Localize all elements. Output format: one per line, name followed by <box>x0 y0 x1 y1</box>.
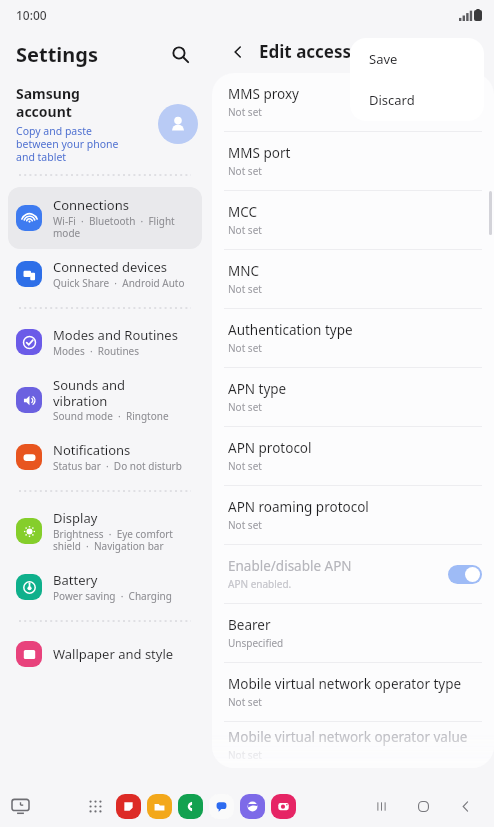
button[interactable]: Home <box>408 791 438 821</box>
staticText: Not set <box>228 223 262 237</box>
button[interactable]: MNC <box>212 250 494 308</box>
button[interactable]: Authentication type <box>212 309 494 367</box>
staticText: Discard <box>369 91 415 109</box>
button[interactable]: Search <box>164 38 196 70</box>
staticText: Notifications <box>53 441 131 459</box>
staticText: Not set <box>228 164 262 178</box>
staticText: Settings <box>16 41 98 68</box>
button[interactable]: Recent panel <box>6 792 34 820</box>
staticText: Brightness · Eye comfort shield · Naviga… <box>53 527 173 553</box>
staticText: Sounds and vibration <box>53 376 125 409</box>
staticText: Sound mode · Ringtone <box>53 409 169 423</box>
button[interactable]: Sounds and vibration <box>0 367 210 432</box>
button[interactable]: Apps <box>82 793 108 819</box>
button[interactable]: Connected devices <box>0 249 210 299</box>
staticText: MMS proxy <box>228 85 299 103</box>
button[interactable]: MMS proxy <box>212 73 494 131</box>
staticText: APN roaming protocol <box>228 498 369 516</box>
staticText: Save <box>369 50 398 68</box>
staticText: Not set <box>228 748 262 762</box>
staticText: Wallpaper and style <box>53 645 174 663</box>
button[interactable]: FOLDER <box>147 794 172 819</box>
staticText: Modes and Routines <box>53 326 178 344</box>
staticText: Not set <box>228 282 262 296</box>
button[interactable]: INTERNET <box>240 794 265 819</box>
staticText: APN type <box>228 380 287 398</box>
staticText: APN enabled. <box>228 577 292 591</box>
staticText: MCC <box>228 203 258 221</box>
button[interactable]: Samsung account <box>0 78 210 170</box>
staticText: MNC <box>228 262 260 280</box>
button[interactable]: Notifications <box>0 432 210 482</box>
staticText: Not set <box>228 341 262 355</box>
button[interactable]: Modes and Routines <box>0 317 210 367</box>
button[interactable]: APN type <box>212 368 494 426</box>
staticText: Not set <box>228 695 262 709</box>
button[interactable]: Enable/disable APN <box>212 545 494 603</box>
staticText: Unspecified <box>228 636 284 650</box>
button[interactable]: CAMERA <box>271 794 296 819</box>
staticText: Bearer <box>228 616 271 634</box>
button[interactable]: MMS port <box>212 132 494 190</box>
button[interactable]: Discard <box>350 79 484 120</box>
button[interactable]: Display <box>0 500 210 562</box>
staticText: Edit access point <box>259 40 401 63</box>
button[interactable]: Connections <box>8 187 202 249</box>
staticText: Quick Share · Android Auto <box>53 276 185 290</box>
button[interactable]: Back <box>224 38 252 66</box>
staticText: Not set <box>228 105 262 119</box>
staticText: Enable/disable APN <box>228 557 352 575</box>
staticText: Samsung account <box>16 84 80 121</box>
staticText: Not set <box>228 400 262 414</box>
staticText: 10:00 <box>16 7 47 23</box>
button[interactable]: Mobile virtual network operator value <box>212 722 494 768</box>
staticText: Modes · Routines <box>53 344 140 358</box>
button[interactable]: Mobile virtual network operator type <box>212 663 494 721</box>
button[interactable]: Save <box>350 38 484 79</box>
staticText: Mobile virtual network operator type <box>228 675 462 693</box>
button[interactable]: APN roaming protocol <box>212 486 494 544</box>
staticText: Status bar · Do not disturb <box>53 459 182 473</box>
button[interactable]: NOTE <box>116 794 141 819</box>
staticText: APN protocol <box>228 439 312 457</box>
staticText: Not set <box>228 459 262 473</box>
button[interactable]: Battery <box>0 562 210 612</box>
staticText: Battery <box>53 571 98 589</box>
staticText: Connected devices <box>53 258 167 276</box>
staticText: Mobile virtual network operator value <box>228 728 468 746</box>
staticText: Authentication type <box>228 321 353 339</box>
button[interactable]: Bearer <box>212 604 494 662</box>
staticText: Copy and paste between your phone and ta… <box>16 124 119 164</box>
staticText: Wi-Fi · Bluetooth · Flight mode <box>53 214 175 240</box>
button[interactable]: APN protocol <box>212 427 494 485</box>
staticText: Power saving · Charging <box>53 589 172 603</box>
button[interactable]: MSG <box>209 794 234 819</box>
button[interactable]: MCC <box>212 191 494 249</box>
staticText: Not set <box>228 518 262 532</box>
staticText: MMS port <box>228 144 291 162</box>
button[interactable]: Recents <box>366 791 396 821</box>
button[interactable]: PHONE <box>178 794 203 819</box>
staticText: Display <box>53 509 98 527</box>
button[interactable]: Back <box>450 791 480 821</box>
button[interactable]: Wallpaper and style <box>0 632 210 676</box>
button[interactable] <box>448 565 482 584</box>
staticText: Connections <box>53 196 129 214</box>
